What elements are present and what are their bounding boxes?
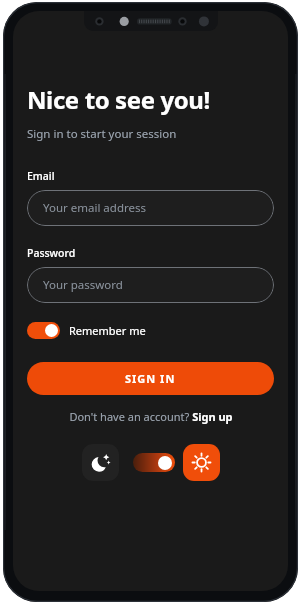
staticText: Don't have an account? Sign up bbox=[69, 409, 233, 424]
staticText: SIGN IN bbox=[125, 371, 176, 386]
button[interactable]: Your password bbox=[27, 267, 274, 303]
staticText: Sign in to start your session bbox=[27, 126, 177, 142]
button[interactable]: SIGN IN bbox=[27, 362, 274, 395]
button[interactable]: Toggle theme bbox=[133, 453, 175, 472]
button[interactable]: Light theme bbox=[183, 444, 220, 481]
button[interactable]: Dark theme bbox=[82, 444, 119, 481]
staticText: Remember me bbox=[69, 323, 146, 338]
staticText: Your email address bbox=[43, 200, 146, 216]
button[interactable]: Your email address bbox=[27, 190, 274, 226]
staticText: Email bbox=[27, 169, 55, 183]
button[interactable]: Remember me bbox=[27, 320, 146, 341]
staticText: Password bbox=[27, 246, 76, 260]
staticText: Your password bbox=[43, 277, 123, 293]
button[interactable]: Don't have an account? Sign up bbox=[69, 409, 233, 424]
staticText: Nice to see you! bbox=[27, 83, 210, 116]
